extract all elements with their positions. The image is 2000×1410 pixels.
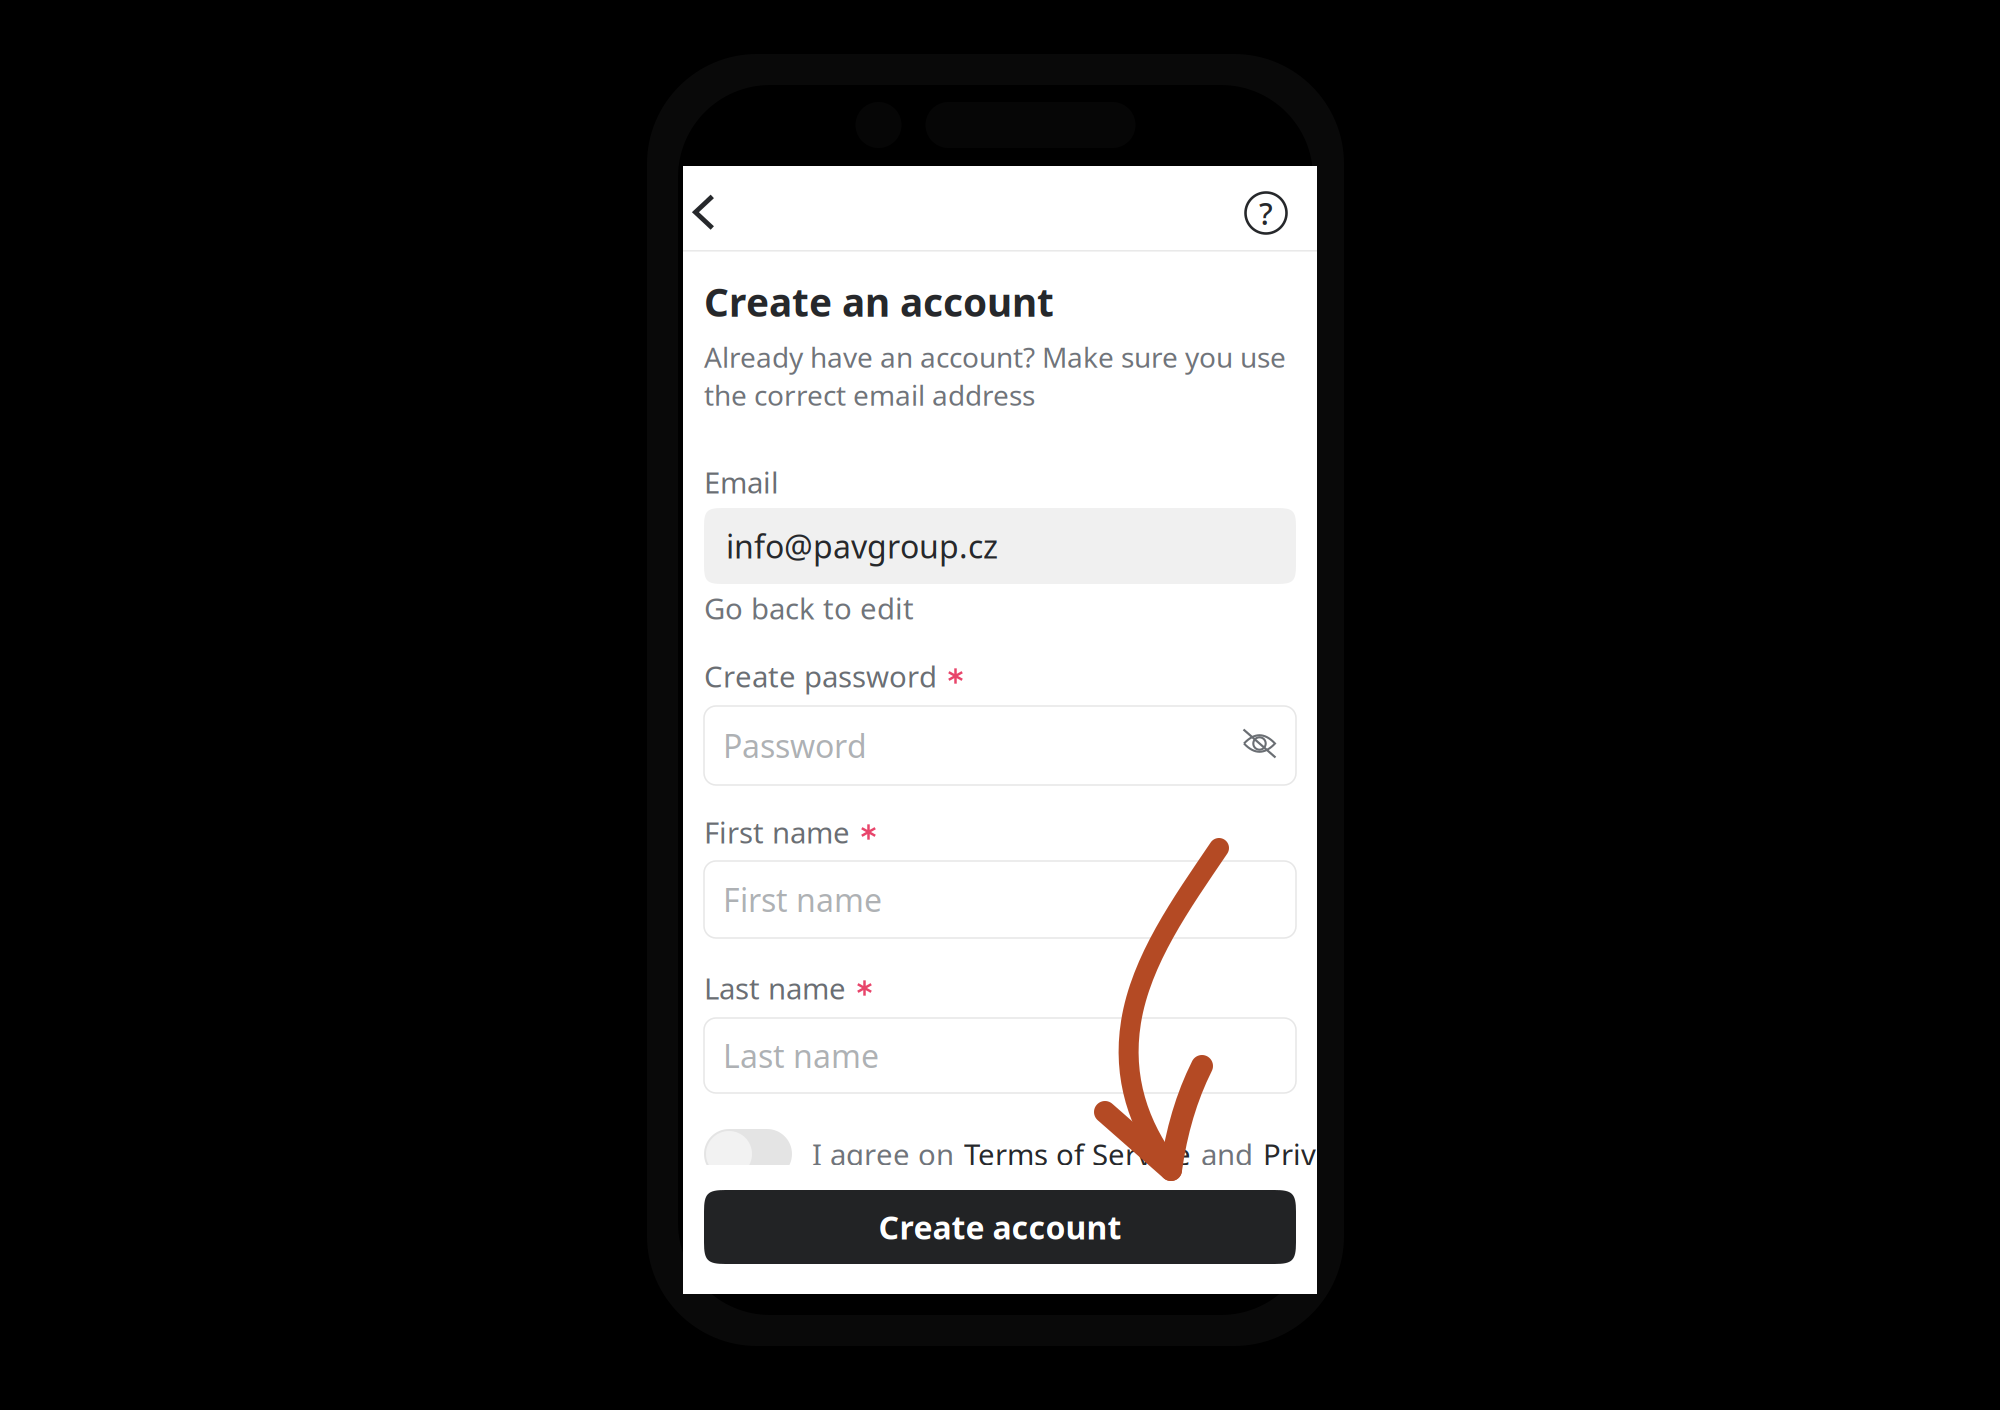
button[interactable]: Password: [704, 706, 1296, 785]
staticText: Email: [704, 462, 779, 501]
button[interactable]: First name: [704, 861, 1296, 938]
button[interactable]: Back: [683, 166, 745, 250]
button[interactable]: Help: [1235, 166, 1317, 250]
staticText: Terms of Service: [964, 1134, 1191, 1173]
staticText: Last name: [723, 1034, 879, 1077]
staticText: and: [1193, 1134, 1261, 1173]
staticText: Last name: [704, 968, 846, 1007]
staticText: the correct email address: [704, 376, 1035, 414]
staticText: First name: [704, 812, 850, 851]
staticText: I agree on: [812, 1134, 962, 1173]
staticText: info@pavgroup.cz: [726, 525, 998, 567]
button[interactable]: Go back to edit: [704, 592, 1296, 624]
staticText: ?: [1259, 193, 1273, 233]
button[interactable]: Create account: [704, 1190, 1296, 1264]
staticText: Go back to edit: [704, 588, 914, 627]
staticText: Privacy Policy: [1263, 1134, 1450, 1173]
button[interactable]: Last name: [704, 1018, 1296, 1093]
staticText: Create password: [704, 656, 937, 695]
staticText: Create account: [878, 1206, 1121, 1248]
button[interactable]: Agree to terms: [704, 1129, 792, 1179]
button[interactable]: info@pavgroup.cz: [704, 508, 1296, 584]
staticText: Already have an account? Make sure you u…: [704, 338, 1286, 376]
staticText: First name: [723, 878, 882, 921]
button[interactable]: Terms of Service: [964, 1135, 1193, 1173]
staticText: Create an account: [704, 276, 1054, 327]
button[interactable]: Privacy Policy: [1263, 1135, 1453, 1173]
staticText: Password: [723, 724, 867, 767]
